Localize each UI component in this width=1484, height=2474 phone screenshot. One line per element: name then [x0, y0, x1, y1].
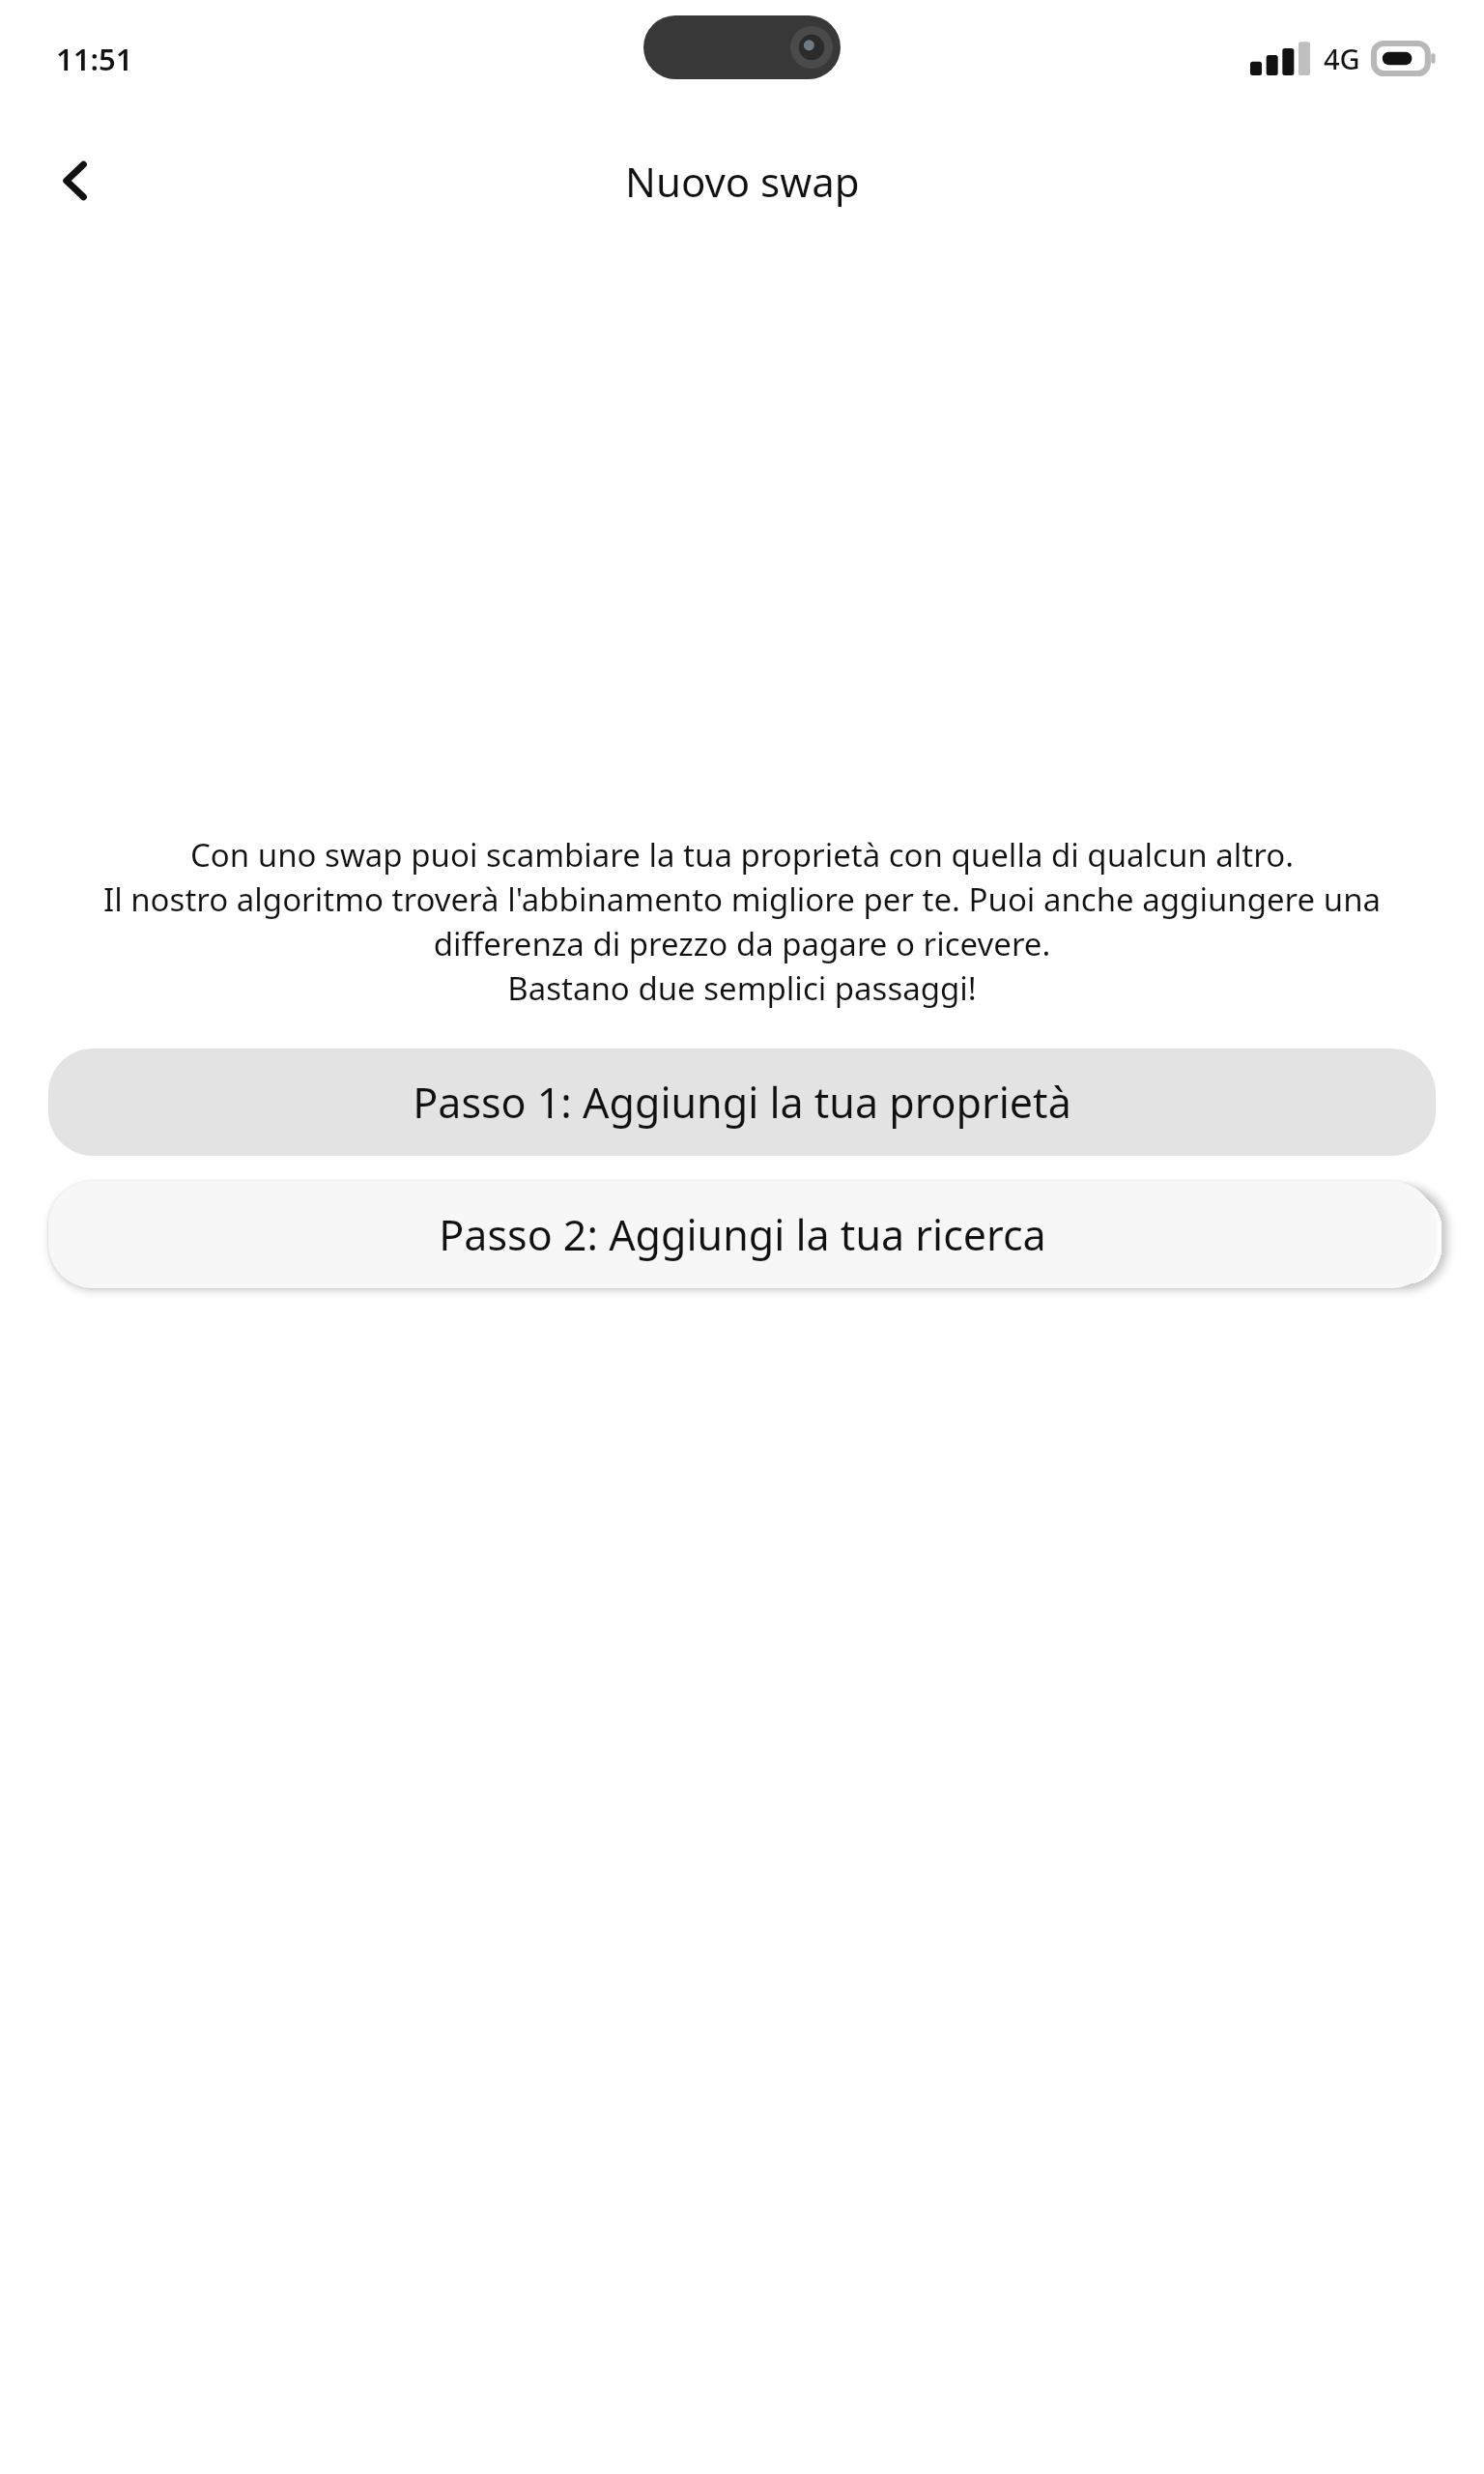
staticText: Con uno swap puoi scambiare la tua propr…	[75, 833, 1409, 1010]
button[interactable]: Passo 1: Aggiungi la tua proprietà	[48, 1049, 1436, 1156]
staticText: Passo 2: Aggiungi la tua ricerca	[439, 1206, 1046, 1263]
staticText: 11:51	[56, 39, 133, 79]
staticText: Passo 1: Aggiungi la tua proprietà	[413, 1074, 1071, 1131]
button[interactable]: Passo 2: Aggiungi la tua ricerca	[48, 1181, 1436, 1288]
staticText: 4G	[1324, 40, 1360, 77]
button[interactable]: Back	[33, 138, 118, 223]
staticText: Nuovo swap	[625, 154, 860, 209]
